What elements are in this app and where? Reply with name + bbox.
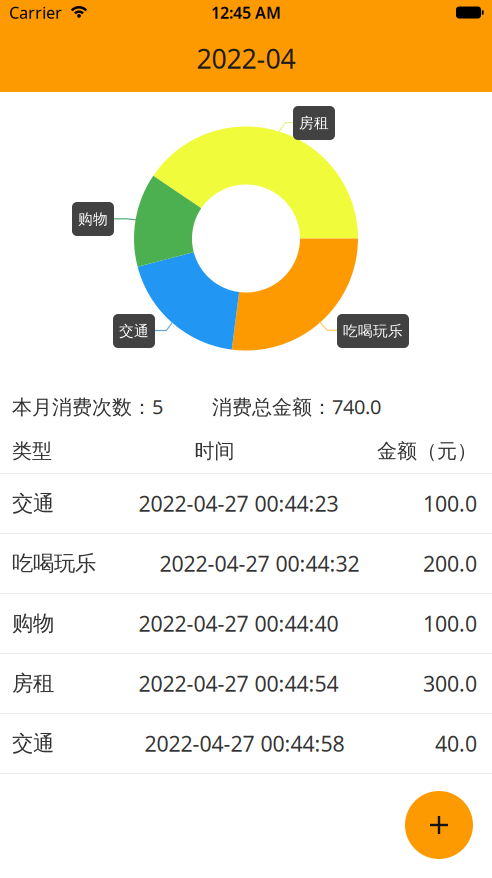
staticText: 房租 — [299, 114, 329, 132]
staticText: 2022-04-27 00:44:58 — [144, 729, 344, 758]
staticText: 时间 — [194, 439, 234, 463]
staticText: 本月消费次数：5 — [12, 393, 163, 420]
button[interactable]: 房租 — [0, 654, 492, 714]
staticText: 交通 — [12, 490, 54, 517]
button[interactable]: 吃喝玩乐 — [0, 534, 492, 594]
staticText: 2022-04-27 00:44:54 — [138, 669, 338, 698]
staticText: 吃喝玩乐 — [343, 322, 403, 340]
staticText: 2022-04-27 00:44:32 — [159, 549, 359, 578]
staticText: 金额（元） — [377, 439, 477, 463]
staticText: 2022-04-27 00:44:40 — [138, 609, 338, 638]
button[interactable]: 购物 — [0, 594, 492, 654]
staticText: 购物 — [12, 610, 54, 637]
staticText: 100.0 — [423, 609, 477, 638]
staticText: 吃喝玩乐 — [12, 550, 96, 577]
staticText: Carrier — [9, 2, 62, 23]
staticText: 300.0 — [423, 669, 477, 698]
staticText: 购物 — [78, 210, 108, 228]
staticText: 200.0 — [423, 549, 477, 578]
staticText: 2022-04-27 00:44:23 — [138, 489, 338, 518]
staticText: 房租 — [12, 670, 54, 697]
staticText: 交通 — [119, 322, 149, 340]
staticText: 2022-04 — [196, 41, 295, 76]
button[interactable]: 交通 — [0, 474, 492, 534]
staticText: 类型 — [12, 439, 52, 463]
button[interactable]: Add expense — [405, 791, 473, 859]
staticText: 消费总金额：740.0 — [212, 393, 381, 420]
staticText: 100.0 — [423, 489, 477, 518]
button[interactable]: 交通 — [0, 714, 492, 774]
staticText: 12:45 AM — [211, 2, 281, 23]
staticText: 交通 — [12, 730, 54, 757]
staticText: 40.0 — [435, 729, 477, 758]
